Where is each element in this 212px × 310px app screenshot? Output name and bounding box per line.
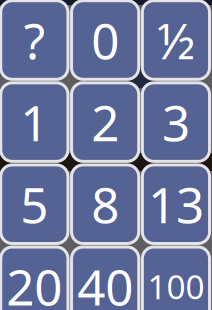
button[interactable]: 100 [142,247,209,310]
staticText: 3 [162,89,190,155]
staticText: 1 [20,89,48,155]
staticText: 2 [91,89,119,155]
button[interactable]: 20 [1,247,68,310]
staticText: 8 [91,171,119,237]
staticText: 0 [91,7,119,73]
button[interactable]: 1 [1,83,68,161]
staticText: 40 [77,253,133,310]
button[interactable]: 0 [71,1,139,79]
staticText: ½ [157,7,195,73]
staticText: ? [24,7,45,73]
button[interactable]: ? [1,1,68,79]
button[interactable]: 2 [71,83,139,161]
button[interactable]: 5 [1,165,68,243]
staticText: 13 [148,171,204,237]
button[interactable]: 40 [71,247,139,310]
staticText: 5 [20,171,48,237]
staticText: 100 [147,264,204,308]
button[interactable]: 3 [142,83,209,161]
button[interactable]: 13 [142,165,209,243]
button[interactable]: ½ [142,1,209,79]
button[interactable]: 8 [71,165,139,243]
staticText: 20 [6,253,62,310]
